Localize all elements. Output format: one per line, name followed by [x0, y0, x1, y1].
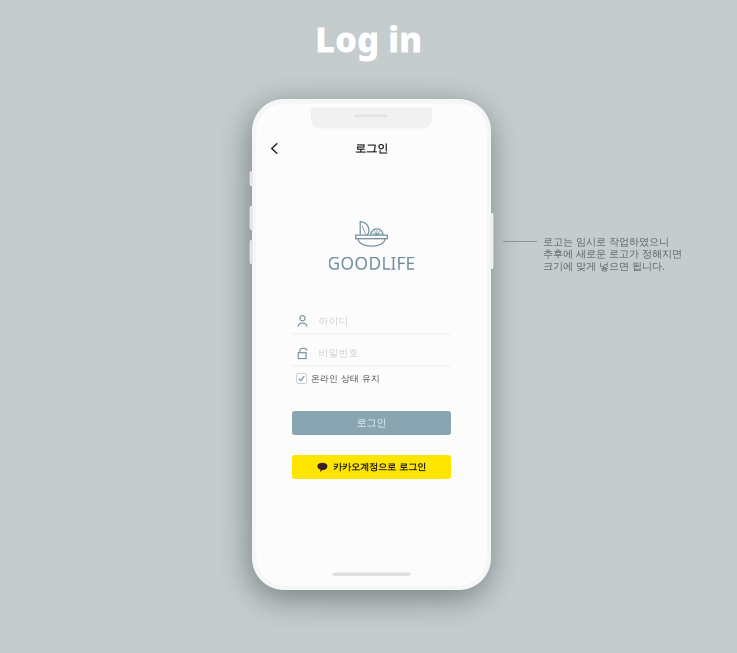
staticText: 온라인 상태 유지 — [311, 373, 380, 384]
staticText: 크기에 맞게 넣으면 됩니다. — [543, 259, 665, 273]
staticText: Log in — [315, 16, 422, 62]
staticText: 비밀번호 — [318, 347, 358, 359]
staticText: 로그인 — [355, 141, 388, 155]
staticText: GOODLIFE — [327, 251, 415, 274]
button[interactable]: 로그인 — [292, 411, 451, 435]
button[interactable]: Back — [262, 136, 286, 160]
staticText: 카카오계정으로 로그인 — [333, 461, 426, 473]
button[interactable]: 온라인 상태 유지 — [292, 371, 451, 385]
button[interactable]: 카카오계정으로 로그인 — [292, 455, 451, 479]
staticText: 아이디 — [318, 315, 348, 327]
staticText: 추후에 새로운 로고가 정해지면 — [543, 248, 682, 260]
staticText: 로그인 — [356, 417, 386, 429]
staticText: 로고는 임시로 작업하였으니 — [543, 236, 669, 248]
